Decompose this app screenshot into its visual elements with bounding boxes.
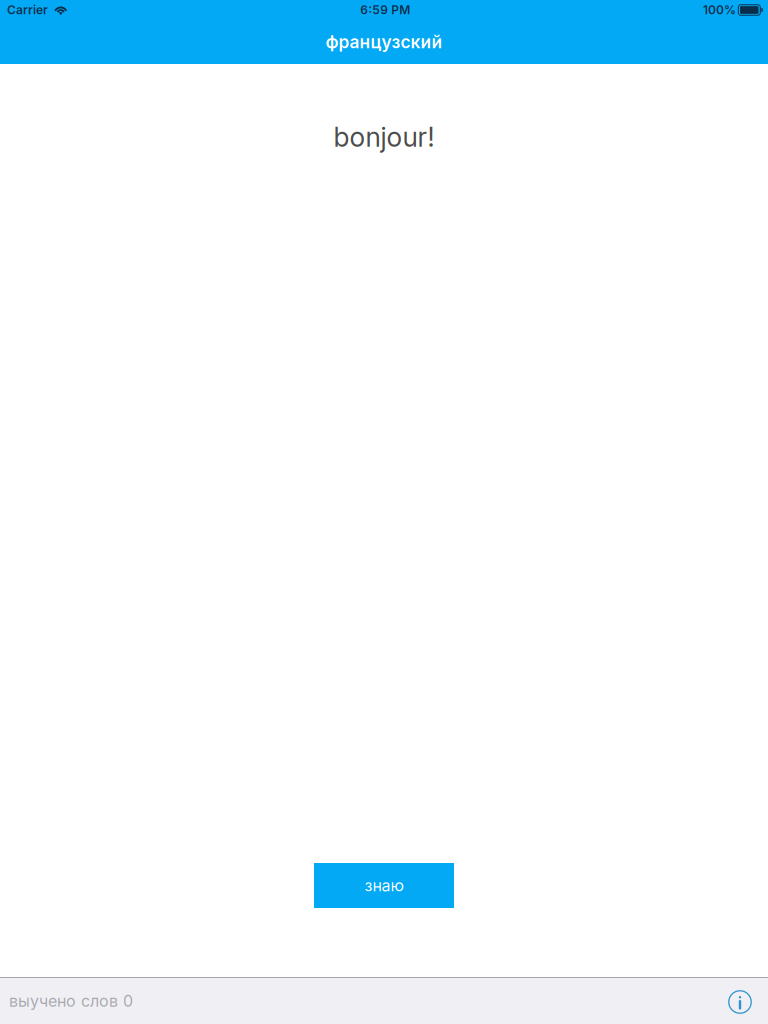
button[interactable]: Info (718, 979, 762, 1023)
button[interactable]: знаю (314, 863, 454, 908)
staticText: 100% (703, 3, 736, 17)
staticText: Carrier (7, 3, 48, 17)
staticText: 6:59 PM (360, 3, 410, 17)
staticText: знаю (364, 876, 403, 895)
staticText: французский (325, 31, 442, 52)
staticText: выучено слов 0 (9, 991, 133, 1011)
staticText: bonjour! (333, 121, 434, 153)
